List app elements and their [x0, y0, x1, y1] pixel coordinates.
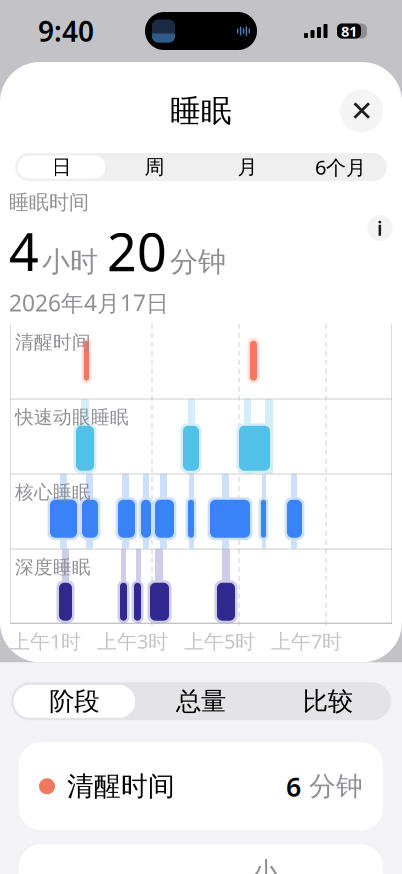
button[interactable]: 关闭 [340, 89, 383, 132]
staticText: 6个月 [315, 154, 366, 180]
button[interactable]: 日 [15, 155, 108, 178]
button[interactable]: 月 [201, 155, 294, 178]
staticText: 清醒时间 [15, 331, 91, 354]
staticText: 分钟 [301, 770, 363, 803]
staticText: 比较 [303, 686, 353, 717]
staticText: 阶段 [49, 686, 99, 717]
staticText: 周 [144, 155, 164, 179]
staticText: 核心睡眠 [15, 481, 91, 504]
staticText: 6 [286, 769, 301, 804]
staticText: 小时 [42, 245, 98, 279]
button[interactable]: 清醒时间 [19, 742, 383, 830]
staticText: 20 [107, 217, 167, 286]
staticText: 上午1时 [10, 628, 81, 654]
button[interactable]: 总量 [138, 685, 264, 718]
staticText: 上午3时 [97, 628, 168, 654]
staticText: 上午5时 [184, 628, 255, 654]
staticText: 月 [237, 155, 257, 179]
staticText: 快速动眼睡眠 [15, 406, 129, 429]
staticText: 分钟 [170, 245, 226, 279]
staticText: 81 [341, 21, 357, 41]
staticText: ✕ [350, 95, 373, 127]
staticText: 小时 [252, 855, 279, 874]
staticText: 总量 [176, 686, 226, 717]
staticText: i [377, 215, 383, 241]
button[interactable]: 阶段 [11, 685, 138, 718]
staticText: 4 [9, 217, 39, 286]
staticText: 清醒时间 [59, 770, 175, 803]
staticText: 上午7时 [271, 628, 342, 654]
staticText: 睡眠 [170, 92, 232, 130]
staticText: 深度睡眠 [15, 556, 91, 579]
staticText: 9:40 [38, 12, 94, 50]
button[interactable]: 6个月 [294, 155, 387, 178]
staticText: 2026年4月17日 [9, 288, 169, 318]
button[interactable]: 比较 [264, 685, 391, 718]
staticText: 日 [51, 155, 71, 179]
button[interactable]: 快速动眼睡眠 [19, 844, 383, 874]
staticText: 睡眠时间 [9, 190, 89, 215]
button[interactable]: 周 [108, 155, 201, 178]
button[interactable]: 关于睡眠数据 [367, 215, 393, 241]
